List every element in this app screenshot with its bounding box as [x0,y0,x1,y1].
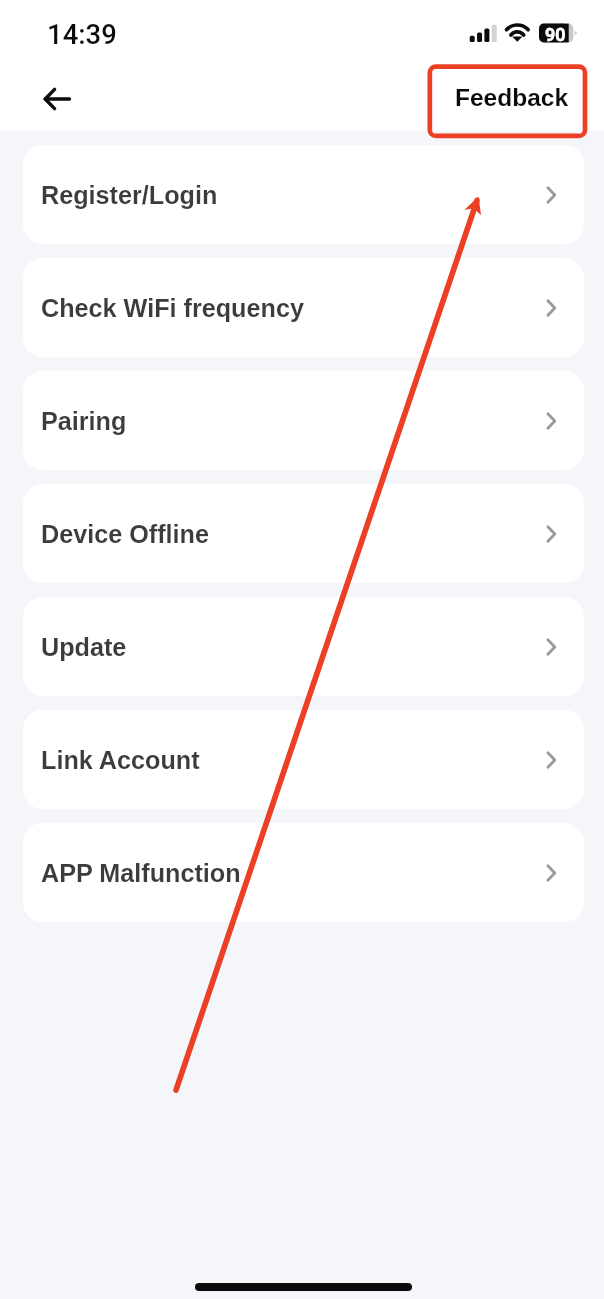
button[interactable]: Register/Login [23,145,584,244]
button[interactable]: Update [23,597,584,696]
staticText: Feedback [455,84,569,111]
staticText: Device Offline [41,520,209,548]
staticText: Update [41,633,127,661]
button[interactable]: Back [34,76,80,122]
staticText: Check WiFi frequency [41,294,304,322]
button[interactable]: Device Offline [23,484,584,583]
staticText: Register/Login [41,181,218,209]
button[interactable]: APP Malfunction [23,823,584,922]
button[interactable]: Pairing [23,371,584,470]
staticText: 14:39 [47,18,117,50]
button[interactable]: Link Account [23,710,584,809]
staticText: 90 [545,24,566,45]
staticText: APP Malfunction [41,859,241,887]
button[interactable]: Check WiFi frequency [23,258,584,357]
staticText: Pairing [41,407,127,435]
staticText: Link Account [41,746,200,774]
